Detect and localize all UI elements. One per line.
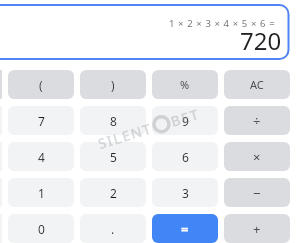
staticText: . [111,221,115,237]
button[interactable]: ) [80,70,146,99]
staticText: 3 [182,185,189,201]
button[interactable]: 0 [8,214,74,243]
button[interactable]: 9 [152,106,218,135]
staticText: 6 [182,149,189,165]
staticText: 1 × 2 × 3 × 4 × 5 × 6 = [169,17,276,30]
staticText: ÷ [253,112,261,130]
staticText: = [181,220,189,238]
button[interactable]: − [224,178,290,207]
button[interactable]: 5 [80,142,146,171]
staticText: % [180,77,190,92]
button[interactable]: . [80,214,146,243]
button[interactable]: 6 [152,142,218,171]
button[interactable]: + [224,214,290,243]
staticText: 0 [38,221,45,237]
staticText: AC [250,77,264,92]
button[interactable]: 8 [80,106,146,135]
staticText: BET [168,104,203,131]
staticText: 7 [38,113,45,129]
button[interactable]: % [152,70,218,99]
button[interactable]: ( [8,70,74,99]
staticText: − [253,184,261,202]
staticText: SILENT [96,118,155,153]
button[interactable]: AC [224,70,290,99]
button[interactable]: = [152,214,218,243]
staticText: 5 [110,149,117,165]
button[interactable]: × [224,142,290,171]
staticText: 720 [240,24,282,57]
staticText: ) [111,77,115,93]
staticText: + [253,220,261,238]
button[interactable]: 3 [152,178,218,207]
staticText: 9 [182,113,189,129]
button[interactable]: ÷ [224,106,290,135]
staticText: 4 [38,149,45,165]
button[interactable]: 2 [80,178,146,207]
staticText: 1 [38,185,45,201]
button[interactable]: 1 [8,178,74,207]
staticText: 8 [110,113,117,129]
staticText: ( [39,77,43,93]
button[interactable]: 4 [8,142,74,171]
button[interactable]: 7 [8,106,74,135]
staticText: 2 [110,185,117,201]
staticText: × [253,148,261,166]
